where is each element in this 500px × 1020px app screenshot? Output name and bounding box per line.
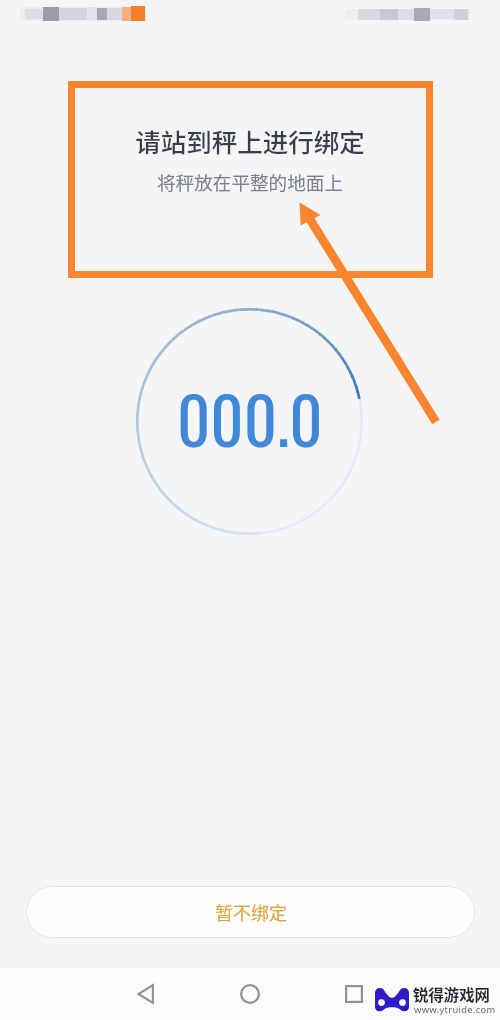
- staticText: 锐得游戏网: [413, 983, 490, 1005]
- staticText: 000.0: [177, 370, 323, 466]
- button[interactable]: Home: [226, 970, 274, 1018]
- staticText: www.ytruide.com: [414, 1003, 496, 1016]
- staticText: 暂不绑定: [215, 899, 287, 925]
- button[interactable]: Back: [121, 970, 169, 1018]
- button[interactable]: Recent apps: [330, 970, 378, 1018]
- button[interactable]: 暂不绑定: [26, 886, 475, 938]
- staticText: 将秤放在平整的地面上: [0, 168, 500, 195]
- staticText: 请站到秤上进行绑定: [0, 122, 500, 159]
